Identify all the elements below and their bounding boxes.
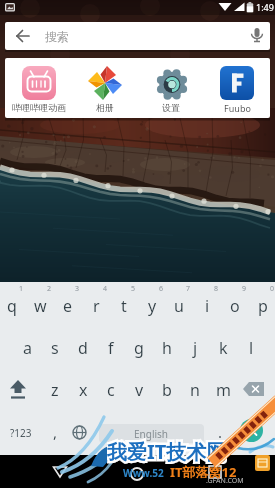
button[interactable] xyxy=(71,424,88,441)
staticText: 搜索 xyxy=(45,29,69,44)
staticText: w xyxy=(34,295,47,317)
button[interactable]: n xyxy=(182,379,208,401)
staticText: 我爱IT技术网 xyxy=(107,438,227,464)
button[interactable]: d xyxy=(70,337,96,359)
button[interactable]: u xyxy=(166,295,192,317)
staticText: d xyxy=(78,337,88,359)
button[interactable]: . xyxy=(213,421,227,443)
staticText: r xyxy=(93,295,100,317)
button[interactable]: x xyxy=(70,379,96,401)
staticText: e xyxy=(63,295,73,317)
staticText: o xyxy=(230,295,240,317)
staticText: 5 xyxy=(131,284,136,294)
staticText: 1:49 xyxy=(256,1,274,13)
button[interactable] xyxy=(46,458,74,486)
staticText: 8 xyxy=(214,284,219,294)
staticText: 6 xyxy=(159,284,164,294)
staticText: n xyxy=(190,379,200,401)
button[interactable]: e xyxy=(55,295,81,317)
staticText: .GFAN.COM xyxy=(206,476,244,486)
button[interactable] xyxy=(240,419,263,442)
staticText: 2 xyxy=(47,284,52,294)
staticText: 9 xyxy=(242,284,247,294)
button[interactable]: 搜索 xyxy=(5,22,270,50)
staticText: a xyxy=(23,337,32,359)
button[interactable]: , xyxy=(48,421,62,443)
staticText: m xyxy=(216,379,231,401)
staticText: 我爱IT技术网 xyxy=(107,438,227,464)
staticText: 哔哩哔哩动画 xyxy=(12,102,66,113)
staticText: t xyxy=(121,295,127,317)
button[interactable]: i xyxy=(194,295,220,317)
staticText: 相册 xyxy=(96,102,114,113)
staticText: v xyxy=(135,379,144,401)
staticText: k xyxy=(219,337,228,359)
button[interactable]: 相册 xyxy=(72,58,138,118)
staticText: q xyxy=(7,295,17,317)
button[interactable]: v xyxy=(126,379,152,401)
staticText: . xyxy=(218,422,223,442)
staticText: c xyxy=(107,379,115,401)
button[interactable]: 哔哩哔哩动画 xyxy=(5,58,72,118)
staticText: f xyxy=(108,337,114,359)
button[interactable]: English xyxy=(99,424,204,443)
staticText: Www.52 xyxy=(123,466,164,480)
staticText: , xyxy=(53,422,58,442)
staticText: 3 xyxy=(75,284,80,294)
staticText: x xyxy=(79,379,88,401)
staticText: i xyxy=(205,295,210,317)
button[interactable]: g xyxy=(126,337,152,359)
button[interactable]: c xyxy=(98,379,124,401)
button[interactable] xyxy=(123,458,151,486)
staticText: b xyxy=(162,379,172,401)
staticText: 1 xyxy=(19,284,24,294)
staticText: h xyxy=(162,337,172,359)
button[interactable]: q xyxy=(0,295,25,317)
button[interactable]: k xyxy=(210,337,236,359)
button[interactable]: y xyxy=(139,295,165,317)
button[interactable]: l xyxy=(238,337,264,359)
button[interactable]: s xyxy=(42,337,68,359)
button[interactable]: m xyxy=(210,379,236,401)
staticText: 0 xyxy=(270,284,275,294)
staticText: IT部落窝12 xyxy=(170,463,237,481)
button[interactable]: a xyxy=(14,337,40,359)
staticText: y xyxy=(148,295,157,317)
button[interactable]: ?123 xyxy=(6,424,35,442)
staticText: 7 xyxy=(186,284,191,294)
staticText: English xyxy=(134,427,169,441)
staticText: g xyxy=(134,337,144,359)
button[interactable] xyxy=(201,458,229,486)
button[interactable]: o xyxy=(222,295,248,317)
button[interactable]: 设置 xyxy=(138,58,204,118)
button[interactable]: p xyxy=(250,295,275,317)
staticText: s xyxy=(51,337,59,359)
button[interactable]: f xyxy=(98,337,124,359)
staticText: 4 xyxy=(103,284,108,294)
staticText: 设置 xyxy=(162,102,180,113)
button[interactable] xyxy=(4,378,32,402)
button[interactable]: r xyxy=(83,295,109,317)
button[interactable]: Fuubo xyxy=(204,58,270,118)
staticText: u xyxy=(174,295,184,317)
button[interactable]: h xyxy=(154,337,180,359)
staticText: j xyxy=(193,337,198,359)
staticText: Fuubo xyxy=(224,102,251,114)
button[interactable] xyxy=(241,380,267,400)
button[interactable]: w xyxy=(27,295,53,317)
staticText: ?123 xyxy=(10,426,32,440)
button[interactable]: t xyxy=(111,295,137,317)
staticText: p xyxy=(258,295,268,317)
button[interactable]: z xyxy=(42,379,68,401)
staticText: z xyxy=(51,379,59,401)
button[interactable]: j xyxy=(182,337,208,359)
staticText: l xyxy=(249,337,254,359)
button[interactable]: b xyxy=(154,379,180,401)
